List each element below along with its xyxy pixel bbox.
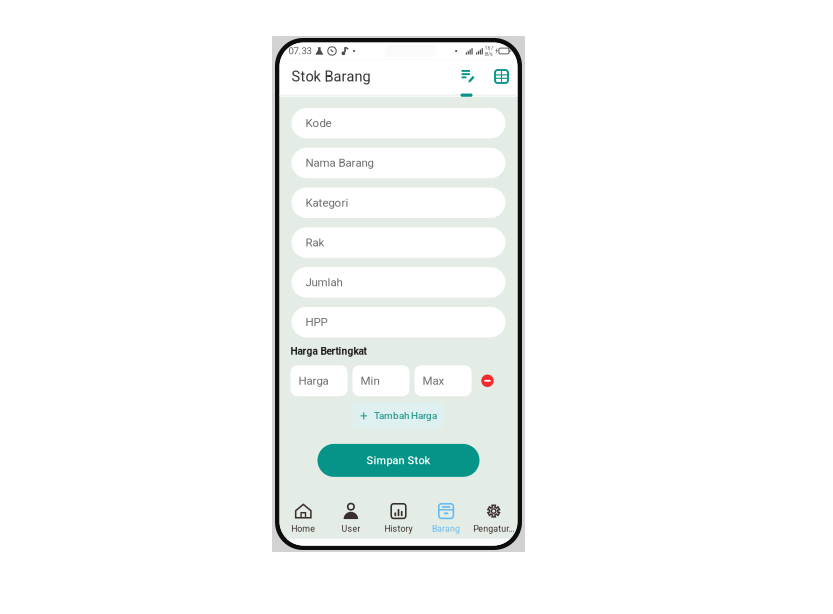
staticText: Min: [360, 374, 379, 387]
staticText: 07.33: [288, 45, 311, 57]
staticText: Rak: [305, 236, 324, 249]
button[interactable]: Pengatur...: [470, 502, 517, 535]
button[interactable]: Rak: [291, 227, 505, 258]
staticText: Harga: [298, 374, 328, 387]
staticText: Kategori: [305, 196, 348, 209]
button[interactable]: Hapus baris harga: [476, 370, 498, 392]
staticText: +: [360, 408, 368, 423]
button[interactable]: Kategori: [291, 187, 505, 218]
button[interactable]: +: [353, 402, 444, 429]
staticText: User: [341, 524, 360, 534]
button[interactable]: Min: [352, 365, 409, 396]
staticText: Max: [422, 374, 444, 387]
staticText: Tambah Harga: [374, 410, 437, 421]
staticText: HPP: [305, 315, 327, 329]
button[interactable]: User: [327, 502, 375, 535]
staticText: Nama Barang: [305, 156, 373, 170]
staticText: History: [384, 524, 412, 534]
button[interactable]: Jumlah: [291, 267, 505, 298]
button[interactable]: Tabel stok barang: [491, 59, 511, 93]
button[interactable]: Harga: [290, 365, 347, 396]
staticText: Jumlah: [305, 276, 342, 289]
staticText: Pengatur...: [473, 524, 514, 534]
button[interactable]: Max: [414, 365, 471, 396]
staticText: Stok Barang: [291, 68, 370, 85]
staticText: Home: [291, 524, 315, 534]
staticText: B/s: [485, 51, 493, 57]
staticText: 167: [485, 45, 494, 51]
button[interactable]: Barang: [422, 502, 470, 535]
button[interactable]: Kode: [291, 108, 505, 138]
button[interactable]: Form input barang: [444, 59, 491, 93]
button[interactable]: Home: [279, 502, 327, 535]
staticText: Simpan Stok: [366, 454, 430, 467]
button[interactable]: HPP: [291, 307, 505, 337]
staticText: Harga Bertingkat: [290, 345, 366, 357]
button[interactable]: Simpan Stok: [317, 444, 479, 477]
staticText: Barang: [432, 524, 460, 534]
button[interactable]: History: [375, 502, 422, 535]
staticText: Kode: [305, 116, 331, 130]
button[interactable]: Nama Barang: [291, 148, 505, 178]
